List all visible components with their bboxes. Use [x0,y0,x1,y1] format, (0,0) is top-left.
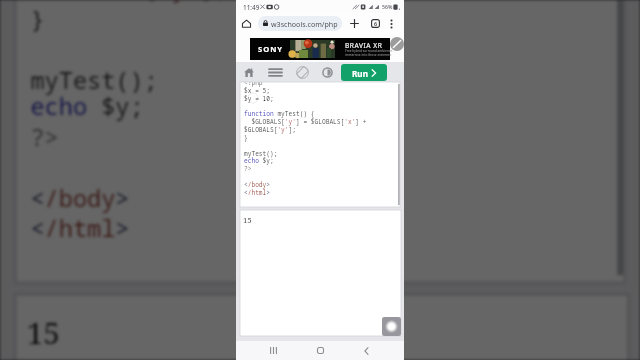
button[interactable]: More options [385,17,398,30]
staticText: function myTest() { [244,109,315,117]
staticText: $GLOBALS['y']; [244,125,296,133]
button[interactable]: Home [240,17,253,30]
staticText: Run [352,68,369,79]
staticText: } [30,1,46,31]
button[interactable]: Home [312,342,328,359]
staticText: $GLOBALS['y']; [30,0,229,1]
button[interactable]: Home [241,64,256,80]
staticText: 15 [243,215,252,226]
staticText: myTest(); [30,62,160,92]
staticText: $GLOBALS['y'] = $GLOBALS['x'] + [244,117,367,125]
staticText: ?> [30,119,61,149]
staticText: </body> [30,180,129,210]
staticText: </html> [244,188,270,196]
staticText: BRAVIA XR [345,41,383,50]
staticText: Free hybrid surround ambience [345,49,393,53]
staticText: 15 [27,313,61,355]
button[interactable]: New tab [348,17,361,30]
button[interactable]: Screen recorder [382,317,401,336]
staticText: } [244,133,248,141]
staticText: $y = 10; [244,94,274,102]
staticText: immersive into those extremes [345,53,392,57]
staticText: ?> [244,164,252,172]
button[interactable]: Menu [268,64,283,80]
staticText: myTest(); [244,149,278,157]
staticText: </body> [244,180,270,188]
staticText: $x = 5; [244,86,270,94]
button[interactable]: Back [358,342,374,359]
staticText: <?php [244,82,263,86]
button[interactable]: Change orientation [295,64,310,80]
staticText: </html> [30,210,129,241]
button[interactable]: SONY [250,38,390,60]
button[interactable]: Dark mode [320,64,334,80]
staticText: 11:49 [243,3,260,12]
button[interactable]: w3schools.com/php [258,16,342,31]
staticText: w3schools.com/php [271,19,338,29]
staticText: SONY [258,44,284,54]
button[interactable]: Tabs [369,17,382,30]
staticText: echo $y; [244,156,274,164]
staticText: 6 [374,20,378,27]
staticText: echo $y; [30,89,145,119]
button[interactable]: Recent apps [265,342,281,359]
button[interactable]: Run [341,64,387,81]
staticText: 56% [382,3,393,10]
